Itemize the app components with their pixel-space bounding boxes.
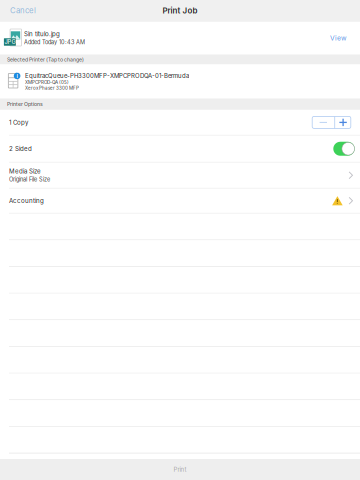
staticText: 1 Copy bbox=[9, 119, 28, 126]
staticText: Original File Size bbox=[9, 176, 50, 183]
staticText: Print Job bbox=[162, 6, 197, 15]
staticText: Accounting bbox=[9, 197, 44, 204]
button[interactable]: Cancel bbox=[0, 0, 50, 21]
button[interactable]: Increase copies bbox=[335, 116, 351, 128]
staticText: JPG bbox=[4, 38, 15, 45]
staticText: Selected Printer (Tap to change) bbox=[7, 56, 84, 63]
button[interactable]: JPG bbox=[0, 21, 360, 54]
button[interactable]: Media Size bbox=[0, 163, 360, 188]
staticText: Xerox Phaser 3300 MFP bbox=[25, 85, 79, 91]
button[interactable]: 2 Sided bbox=[333, 142, 355, 156]
button[interactable]: Decrease copies bbox=[312, 116, 334, 128]
staticText: Printer Options bbox=[7, 101, 43, 107]
staticText: Added Today 10:43 AM bbox=[24, 39, 85, 46]
staticText: Sin título.jpg bbox=[24, 30, 60, 38]
button[interactable]: 1 Copy bbox=[0, 110, 360, 135]
staticText: EquitracQueue-PH3300MFP-XMPCPRODQA-01-Be… bbox=[25, 72, 189, 79]
staticText: Print bbox=[173, 466, 186, 473]
button[interactable]: 2 Sided bbox=[0, 136, 360, 162]
button[interactable]: Accounting bbox=[0, 189, 360, 213]
staticText: Cancel bbox=[10, 6, 36, 15]
button[interactable]: i bbox=[0, 64, 360, 98]
staticText: XMPCPROD-QA (05) bbox=[25, 80, 69, 85]
staticText: 2 Sided bbox=[9, 145, 32, 152]
staticText: i bbox=[17, 72, 18, 79]
staticText: Media Size bbox=[9, 168, 41, 175]
staticText: View bbox=[330, 34, 347, 42]
